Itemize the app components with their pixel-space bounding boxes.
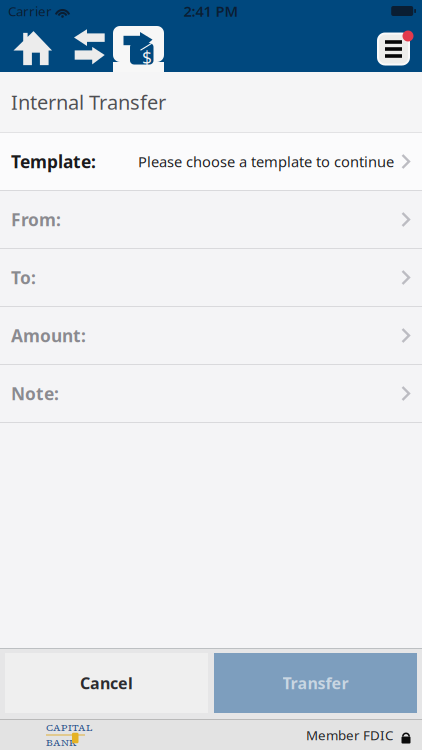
button[interactable]: From: <box>0 191 422 249</box>
staticText: Cancel <box>80 672 133 694</box>
staticText: Please choose a template to continue <box>138 152 394 171</box>
button[interactable]: Template: <box>0 133 422 191</box>
staticText: To: <box>11 266 36 289</box>
button[interactable]: Note: <box>0 365 422 423</box>
staticText: Note: <box>11 382 59 405</box>
button[interactable]: Home <box>0 22 66 72</box>
staticText: From: <box>11 208 61 231</box>
staticText: Template: <box>11 150 96 173</box>
button[interactable]: Menu <box>377 27 418 66</box>
staticText: Transfer <box>282 672 348 694</box>
button[interactable]: Amount: <box>0 307 422 365</box>
staticText: Member FDIC <box>306 726 393 744</box>
button[interactable]: To: <box>0 249 422 307</box>
button[interactable]: Transfers <box>66 22 113 72</box>
staticText: CAPITAL <box>46 721 92 734</box>
button[interactable]: Internal Transfer <box>113 22 164 72</box>
staticText: $ <box>142 46 152 69</box>
staticText: Amount: <box>11 324 86 347</box>
staticText: Internal Transfer <box>11 89 166 115</box>
button[interactable]: Transfer <box>214 653 417 713</box>
staticText: 2:41 PM <box>183 1 238 21</box>
staticText: BANK <box>46 736 77 749</box>
staticText: Carrier <box>8 2 52 20</box>
button[interactable]: Cancel <box>5 653 208 713</box>
